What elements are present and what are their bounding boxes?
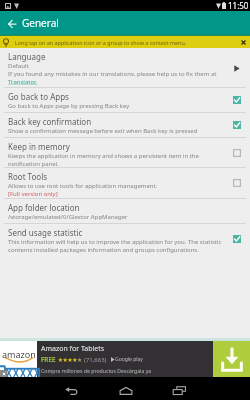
staticText: Root Tools (8, 171, 48, 182)
button[interactable]: amazon (0, 341, 250, 377)
staticText: Go back to Apps (8, 91, 69, 102)
staticText: 11:50 (228, 0, 249, 11)
button[interactable]: Close (238, 37, 248, 47)
button[interactable]: Root Tools (0, 168, 250, 198)
button[interactable]: Back (0, 11, 21, 35)
staticText: Show a confirmation message before exit … (8, 127, 198, 135)
staticText: Keep in memory (8, 141, 70, 152)
button[interactable]: Back (64, 383, 79, 398)
button[interactable]: Go back to Apps (0, 88, 250, 112)
staticText: [Full version only] (8, 190, 58, 198)
button[interactable]: Language (0, 48, 250, 87)
button[interactable]: Home (118, 383, 133, 398)
staticText: Default (8, 62, 29, 70)
button[interactable]: Recents (172, 383, 187, 398)
staticText: Language (8, 51, 46, 62)
button[interactable]: Download (213, 341, 250, 377)
staticText: Keeps the application in memory and show… (8, 152, 229, 167)
staticText: General (22, 16, 59, 30)
staticText: Back key confirmation (8, 116, 92, 127)
button[interactable]: Close ad (0, 370, 7, 377)
button[interactable]: Toggle (232, 95, 242, 105)
button[interactable]: Toggle (232, 120, 242, 130)
staticText: If you found any mistakes in our transla… (8, 70, 217, 78)
staticText: Translator. (8, 78, 38, 86)
button[interactable]: Toggle (232, 148, 242, 158)
staticText: Google play (115, 356, 143, 363)
button[interactable]: Back key confirmation (0, 113, 250, 137)
staticText: This information will help us to improve… (8, 238, 229, 254)
staticText: Long tap on an application icon or a gro… (15, 39, 187, 46)
staticText: Compra millones de productos Descárgala … (41, 367, 152, 374)
staticText: App folder location (8, 202, 80, 213)
button[interactable]: Keep in memory (0, 138, 250, 167)
staticText: Amazon for Tablets (41, 344, 105, 354)
button[interactable]: Long tap on an application icon or a gro… (0, 36, 250, 48)
button[interactable]: Toggle (232, 234, 242, 244)
button[interactable]: App folder location (0, 199, 250, 223)
staticText: /storage/emulated/0/Glextor AppManager (8, 213, 128, 221)
button[interactable]: Toggle (232, 178, 242, 188)
staticText: FREE (41, 355, 56, 364)
staticText: (71,663) (84, 356, 107, 364)
staticText: Send usage statistic (8, 227, 83, 238)
button[interactable]: Send usage statistic (0, 224, 250, 254)
staticText: Go back to Apps page by pressing Back ke… (8, 102, 130, 110)
staticText: Allows to use root tools for application… (8, 182, 158, 190)
staticText: amazon (2, 348, 36, 360)
